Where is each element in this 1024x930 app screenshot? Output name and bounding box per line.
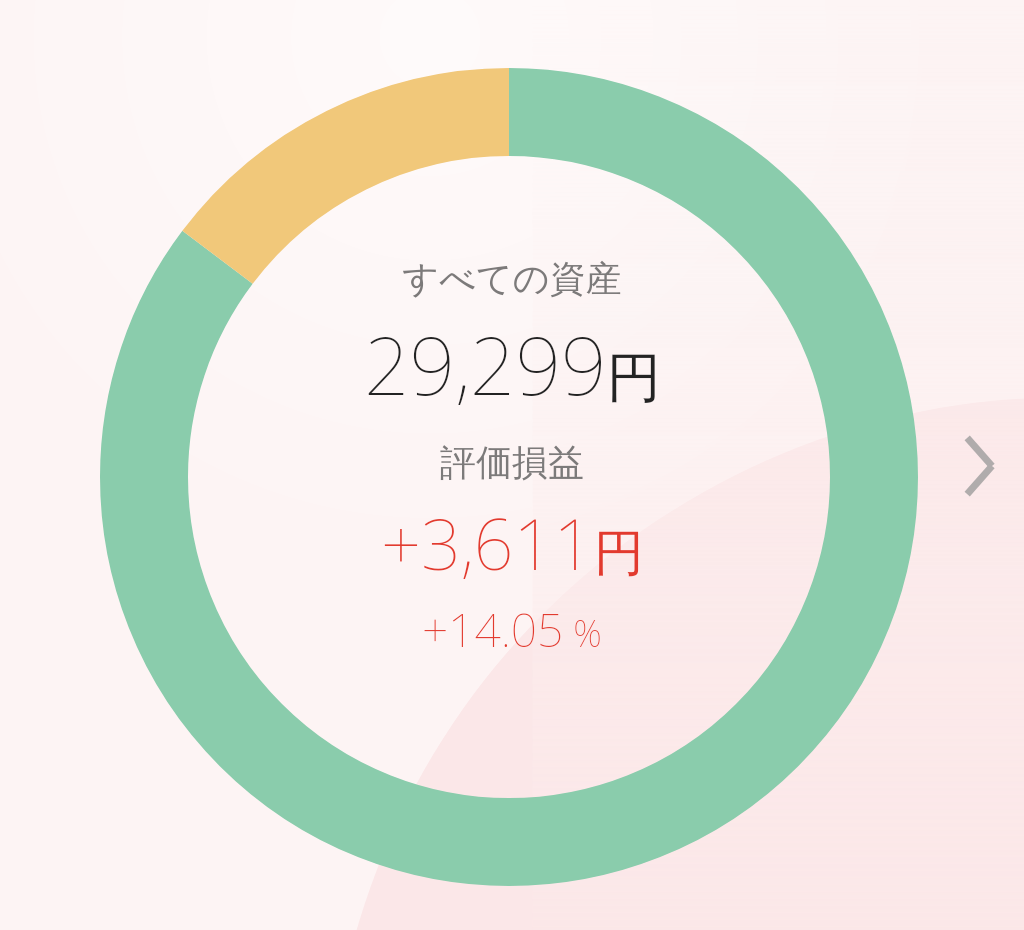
button[interactable] — [0, 0, 1024, 930]
button[interactable]: 次へ — [948, 418, 1012, 514]
staticText: % — [564, 609, 602, 658]
staticText: すべての資産 — [402, 256, 622, 301]
staticText: +3,611 — [381, 495, 594, 590]
staticText: 円 — [594, 522, 644, 585]
staticText: 評価損益 — [440, 440, 584, 485]
staticText: +14.05 — [422, 598, 564, 661]
staticText: 29,299 — [364, 309, 607, 418]
staticText: 円 — [607, 344, 661, 412]
